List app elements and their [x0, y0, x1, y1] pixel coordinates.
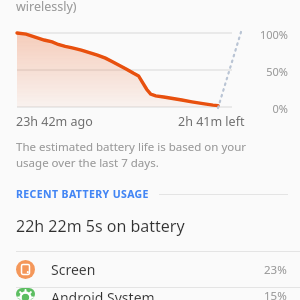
- staticText: 23h 42m ago: [16, 113, 93, 130]
- staticText: wirelessly): [16, 0, 77, 15]
- staticText: 23%: [264, 262, 287, 278]
- staticText: 15%: [264, 288, 287, 300]
- staticText: Android System: [51, 288, 155, 300]
- staticText: 2h 41m left: [178, 113, 245, 130]
- button[interactable]: Android System: [0, 288, 300, 300]
- staticText: Screen: [51, 260, 96, 279]
- staticText: 50%: [266, 64, 288, 79]
- staticText: 100%: [259, 27, 288, 42]
- staticText: RECENT BATTERY USAGE: [16, 187, 149, 201]
- staticText: The estimated battery life is based on y…: [16, 139, 278, 170]
- staticText: 0%: [272, 101, 288, 116]
- button[interactable]: Screen: [0, 252, 300, 287]
- staticText: 22h 22m 5s on battery: [16, 215, 185, 237]
